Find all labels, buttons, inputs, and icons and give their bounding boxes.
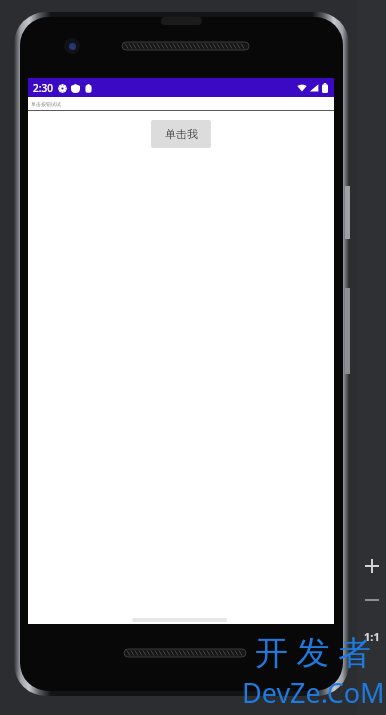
staticText: DevZe.CoM	[242, 674, 385, 711]
staticText: 2:30	[33, 81, 53, 95]
staticText: 单击我	[165, 127, 198, 141]
button[interactable]: Actual size	[359, 623, 385, 649]
staticText: 单击按钮试试	[31, 101, 61, 107]
button[interactable]: 单击我	[151, 120, 211, 148]
staticText: 开 发 者	[255, 629, 372, 674]
button[interactable]: Zoom in	[359, 553, 385, 579]
staticText: 1:1	[364, 629, 380, 644]
button[interactable]: Zoom out	[359, 587, 385, 613]
